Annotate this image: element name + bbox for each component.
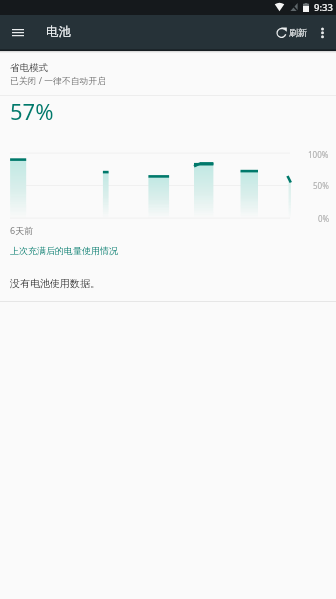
button[interactable]: More options [310,20,334,44]
staticText: 57% [10,96,54,126]
staticText: 9:33 [314,1,333,14]
staticText: 刷新 [289,27,307,38]
button[interactable]: 刷新 [272,20,311,44]
button[interactable]: Open navigation drawer [0,15,35,49]
staticText: 没有电池使用数据。 [10,277,100,290]
staticText: 0% [318,213,330,224]
staticText: 电池 [46,24,71,40]
staticText: 已关闭 / 一律不自动开启 [10,75,106,87]
button[interactable]: 省电模式 [0,58,336,93]
staticText: 上次充满后的电量使用情况 [10,245,118,256]
button[interactable]: 上次充满后的电量使用情况 [0,243,128,258]
staticText: 省电模式 [10,62,48,74]
staticText: 6天前 [10,224,34,236]
staticText: 50% [313,180,329,191]
staticText: 100% [308,149,329,160]
